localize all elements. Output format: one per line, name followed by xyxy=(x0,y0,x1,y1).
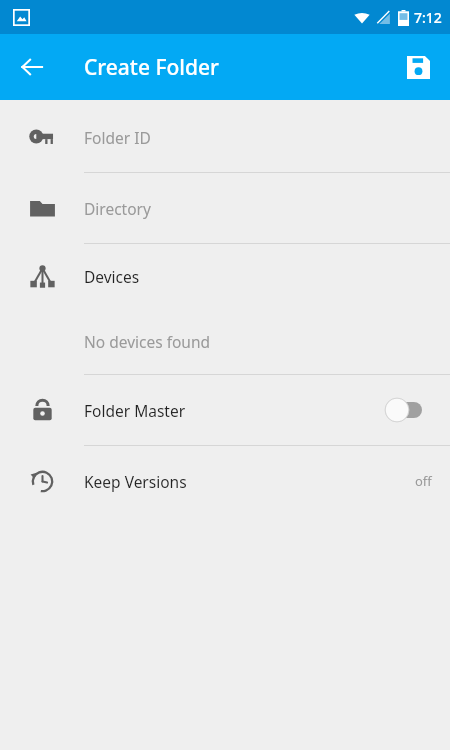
staticText: No devices found xyxy=(84,331,450,352)
button[interactable]: Save xyxy=(394,43,442,91)
button[interactable]: No devices found xyxy=(0,309,450,375)
staticText: Directory xyxy=(84,198,450,219)
button[interactable]: Folder ID xyxy=(0,102,450,173)
staticText: Folder ID xyxy=(84,127,450,148)
staticText: Devices xyxy=(84,266,450,287)
button[interactable]: Back xyxy=(8,43,56,91)
button[interactable]: Folder Master toggle xyxy=(382,395,432,425)
staticText: Create Folder xyxy=(84,53,219,82)
button[interactable]: Devices xyxy=(0,244,450,309)
staticText: Folder Master xyxy=(84,400,382,421)
staticText: 7:12 xyxy=(414,8,442,27)
button[interactable]: Keep Versions xyxy=(0,446,450,516)
staticText: Keep Versions xyxy=(84,471,415,492)
staticText: off xyxy=(415,472,432,490)
button[interactable]: Directory xyxy=(0,173,450,244)
button[interactable]: Folder Master xyxy=(0,375,450,446)
